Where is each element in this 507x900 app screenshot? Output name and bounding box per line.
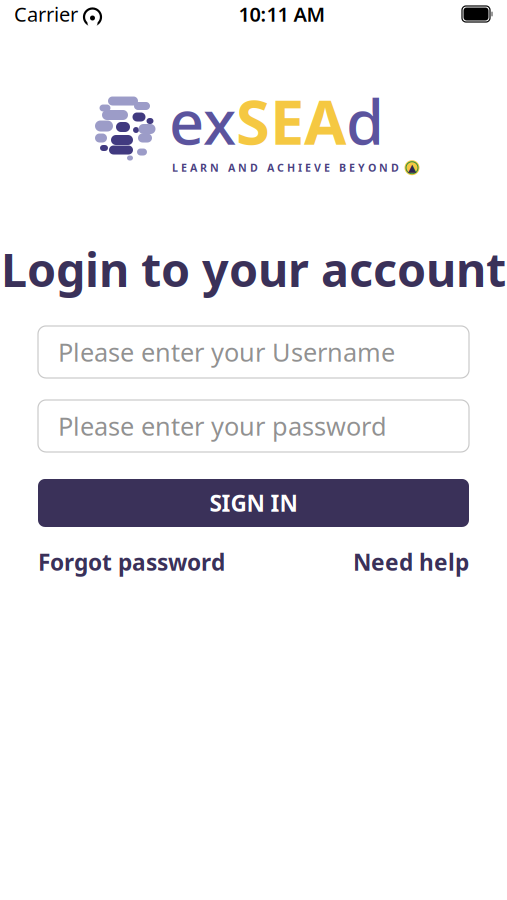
staticText: SIGN IN (209, 488, 297, 518)
staticText: L E A R N A N D A C H I E V E B E Y O N … (172, 161, 399, 175)
button[interactable]: Need help (353, 547, 469, 577)
staticText: Login to your account (1, 238, 506, 300)
staticText: SEA (236, 80, 346, 162)
staticText: Forgot password (38, 547, 225, 577)
button[interactable]: SIGN IN (38, 479, 469, 527)
staticText: Need help (353, 547, 469, 577)
button[interactable]: Please enter your password (38, 400, 469, 452)
staticText: ex (169, 80, 236, 162)
staticText: Carrier (14, 1, 78, 27)
button[interactable]: Forgot password (38, 547, 225, 577)
staticText: Please enter your password (58, 409, 387, 443)
button[interactable]: Please enter your Username (38, 326, 469, 378)
staticText: ▲ (408, 162, 416, 174)
staticText: Please enter your Username (58, 335, 395, 369)
staticText: d (346, 80, 384, 162)
staticText: 10:11 AM (238, 1, 325, 27)
